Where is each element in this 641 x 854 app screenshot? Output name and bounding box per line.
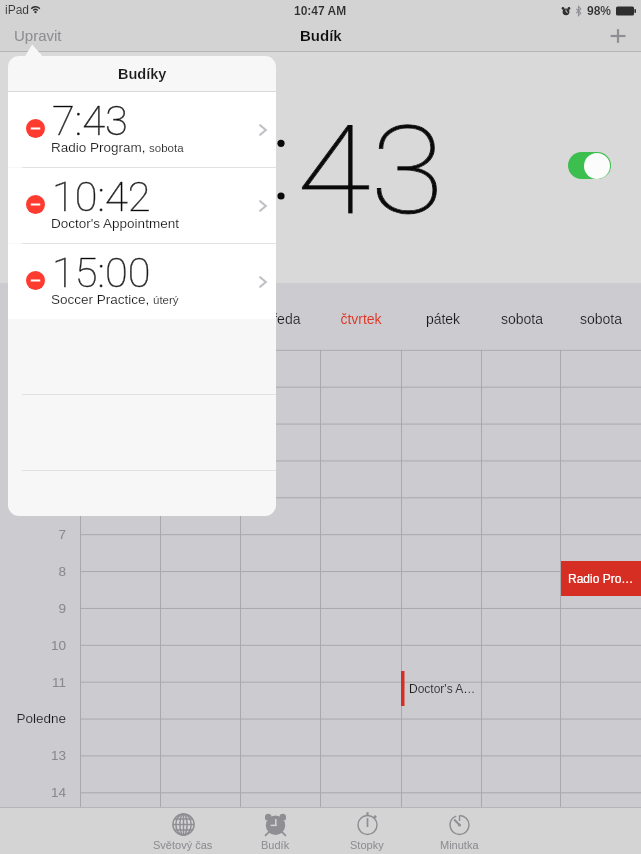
staticText: úterý <box>153 294 179 307</box>
staticText: Minutka <box>440 839 479 851</box>
button[interactable]: Add alarm <box>603 21 633 51</box>
staticText: Stopky <box>350 839 384 851</box>
staticText: Poledne <box>0 711 66 726</box>
staticText: pátek <box>393 311 493 327</box>
button[interactable]: Delete alarm <box>8 92 276 167</box>
staticText: 10:42 <box>52 174 151 221</box>
staticText: 15:00 <box>52 250 151 297</box>
staticText: 98% <box>587 4 612 17</box>
button[interactable]: Doctor's A… <box>401 671 491 706</box>
staticText: 7:43 <box>52 98 128 145</box>
staticText: sobota <box>551 311 641 327</box>
staticText: Doctor's Appointment <box>51 216 179 231</box>
staticText: 13 <box>0 748 66 763</box>
staticText: Budík <box>300 27 342 44</box>
button[interactable]: Delete alarm <box>8 244 276 319</box>
staticText: Budík <box>261 839 290 851</box>
staticText: 14 <box>0 785 66 800</box>
staticText: 10:42 <box>52 174 151 221</box>
button[interactable]: Stopky <box>321 808 413 854</box>
staticText: Upravit <box>14 27 62 44</box>
button[interactable]: Delete alarm <box>26 271 45 290</box>
staticText: 9 <box>0 601 66 616</box>
staticText: Radio Pro… <box>568 572 634 585</box>
staticText: středa <box>231 311 331 327</box>
staticText: Budíky <box>118 66 167 82</box>
button[interactable]: Delete alarm <box>26 195 45 214</box>
staticText: 10:47 AM <box>294 4 347 17</box>
staticText: 43 <box>297 100 444 243</box>
staticText: 8 <box>0 564 66 579</box>
button[interactable]: Světový čas <box>137 808 229 854</box>
staticText: čtvrtek <box>311 311 411 327</box>
staticText: iPad <box>5 3 30 16</box>
staticText: 10 <box>0 638 66 653</box>
staticText: Světový čas <box>153 839 213 851</box>
staticText: sobota <box>149 142 184 155</box>
staticText: 15:00 <box>52 250 151 297</box>
staticText: 7:43 <box>52 98 128 145</box>
staticText: Radio Program, <box>51 140 150 155</box>
button[interactable]: Upravit <box>0 20 76 51</box>
button[interactable]: Minutka <box>413 808 505 854</box>
staticText: Soccer Practice, <box>51 292 154 307</box>
button[interactable]: Delete alarm <box>8 168 276 243</box>
staticText: sobota <box>472 311 572 327</box>
button[interactable]: Delete alarm <box>26 119 45 138</box>
button[interactable]: Radio Pro… <box>561 561 641 596</box>
staticText: 43 <box>297 100 444 243</box>
staticText: Doctor's A… <box>409 682 476 695</box>
button[interactable]: Alarm enabled <box>568 152 611 179</box>
button[interactable]: Budík <box>229 808 321 854</box>
staticText: 11 <box>0 675 66 690</box>
staticText: 7 <box>0 527 66 542</box>
